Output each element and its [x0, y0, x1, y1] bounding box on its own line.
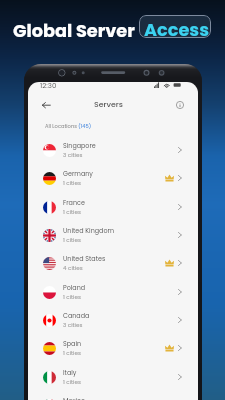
staticText: 1 cities — [63, 293, 81, 301]
button[interactable]: Spain — [28, 334, 198, 362]
button[interactable]: Access — [139, 15, 211, 38]
button[interactable]: Poland — [28, 278, 198, 306]
staticText: Poland — [63, 283, 86, 292]
staticText: Singapore — [63, 141, 96, 150]
staticText: 3 cities — [63, 151, 83, 159]
staticText: 1 cities — [63, 378, 81, 386]
button[interactable]: Italy — [28, 363, 198, 391]
button[interactable]: Singapore — [28, 136, 198, 164]
staticText: Canada — [63, 311, 90, 320]
staticText: Germany — [63, 169, 93, 178]
staticText: Servers — [94, 99, 123, 110]
staticText: 1 cities — [63, 179, 81, 187]
staticText: Italy — [63, 368, 77, 377]
staticText: 3 cities — [63, 321, 83, 329]
staticText: Global Server — [13, 18, 135, 43]
button[interactable]: France — [28, 193, 198, 221]
staticText: 1 cities — [63, 236, 81, 244]
staticText: Access — [144, 17, 210, 38]
staticText: 1 cities — [63, 349, 81, 357]
staticText: All Locations (145) — [45, 123, 92, 130]
button[interactable]: Mexico — [28, 391, 198, 400]
button[interactable]: Info — [174, 99, 186, 111]
button[interactable]: Germany — [28, 164, 198, 192]
button[interactable]: United States — [28, 249, 198, 277]
button[interactable]: Canada — [28, 306, 198, 334]
staticText: Spain — [63, 339, 82, 348]
button[interactable]: Back — [38, 98, 52, 112]
staticText: 1 cities — [63, 208, 81, 216]
staticText: Mexico — [63, 396, 86, 400]
staticText: France — [63, 198, 85, 207]
staticText: United States — [63, 254, 106, 263]
staticText: 4 cities — [63, 264, 83, 272]
button[interactable]: United Kingdom — [28, 221, 198, 249]
staticText: 12:30 — [40, 82, 57, 91]
staticText: United Kingdom — [63, 226, 115, 235]
